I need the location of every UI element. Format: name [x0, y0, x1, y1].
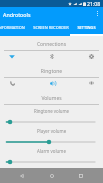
staticText: SETTINGS	[77, 25, 96, 30]
staticText: Androtools	[3, 11, 31, 18]
button[interactable]: Alarm volume	[0, 144, 103, 164]
button[interactable]: Back	[14, 168, 30, 183]
button[interactable]: Player volume	[0, 124, 103, 144]
button[interactable]: INFORMATION	[0, 20, 35, 36]
staticText: Alarm volume	[0, 148, 103, 154]
button[interactable]: Media volume	[44, 77, 60, 89]
staticText: Ringtone	[0, 68, 103, 75]
button[interactable]: SETTINGS	[70, 20, 103, 36]
button[interactable]: More options	[91, 7, 103, 20]
button[interactable]: SCREEN RECORDER	[26, 20, 75, 36]
button[interactable]: Recents	[73, 168, 89, 183]
staticText: INFORMATION	[0, 25, 25, 30]
button[interactable]: Bluetooth	[44, 50, 60, 62]
staticText: Ringtone volume	[0, 108, 103, 114]
staticText: Connections	[0, 41, 103, 48]
button[interactable]: Wi-Fi	[4, 50, 20, 62]
staticText: Volumes	[0, 95, 103, 102]
button[interactable]: Phone ringtone	[4, 77, 20, 89]
staticText: 21:08	[87, 0, 101, 7]
button[interactable]: Vibrate	[83, 77, 99, 89]
button[interactable]: Location	[83, 50, 99, 62]
button[interactable]: Home	[44, 168, 60, 183]
button[interactable]: Ringtone volume	[0, 104, 103, 124]
staticText: Player volume	[0, 128, 103, 134]
staticText: SCREEN RECORDER	[33, 25, 69, 30]
